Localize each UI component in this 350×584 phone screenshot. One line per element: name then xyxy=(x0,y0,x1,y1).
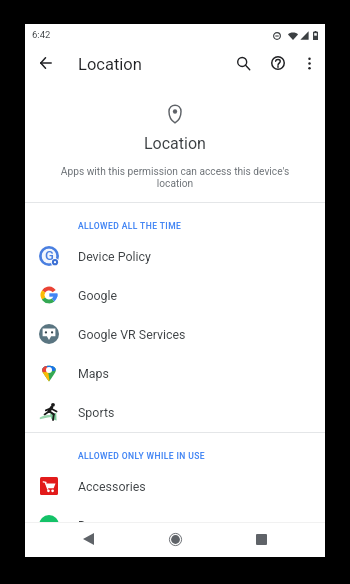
staticText: Location xyxy=(78,55,142,74)
button[interactable]: Back xyxy=(72,523,104,555)
button[interactable]: More options xyxy=(295,49,323,77)
staticText: 6:42 xyxy=(32,29,51,40)
staticText: Location xyxy=(144,134,206,153)
staticText: Sports xyxy=(78,405,115,420)
button[interactable]: Duo xyxy=(25,506,325,545)
staticText: Apps with this permission can access thi… xyxy=(55,166,295,190)
staticText: Maps xyxy=(78,366,109,381)
button[interactable]: Back xyxy=(32,49,60,77)
button[interactable]: Google VR Services xyxy=(25,315,325,354)
button[interactable]: Home xyxy=(159,523,191,555)
staticText: G xyxy=(45,248,54,263)
staticText: ALLOWED ALL THE TIME xyxy=(78,221,182,231)
staticText: ALLOWED ONLY WHILE IN USE xyxy=(78,451,206,461)
button[interactable]: Search xyxy=(229,49,257,77)
staticText: Duo xyxy=(78,518,101,533)
button[interactable]: Google xyxy=(25,276,325,315)
button[interactable]: G xyxy=(25,237,325,276)
staticText: Google xyxy=(78,288,118,303)
button[interactable]: Sports xyxy=(25,393,325,432)
staticText: Accessories xyxy=(78,479,146,494)
button[interactable]: Recents xyxy=(245,523,277,555)
staticText: Device Policy xyxy=(78,249,151,264)
button[interactable]: Help xyxy=(264,49,292,77)
staticText: Google VR Services xyxy=(78,327,186,342)
button[interactable]: Maps xyxy=(25,354,325,393)
button[interactable]: Accessories xyxy=(25,467,325,506)
